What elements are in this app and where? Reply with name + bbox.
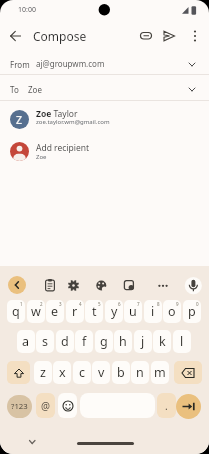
button[interactable]: n — [131, 361, 149, 384]
staticText: h — [119, 333, 127, 350]
button[interactable]: k — [153, 330, 171, 353]
button[interactable]: c — [73, 361, 91, 384]
staticText: 9 — [176, 301, 179, 307]
staticText: k — [159, 333, 166, 350]
staticText: t — [92, 303, 97, 320]
staticText: Compose — [33, 28, 87, 44]
staticText: a — [22, 333, 30, 350]
staticText: Add recipient — [36, 142, 90, 154]
staticText: m — [154, 364, 166, 381]
staticText: 1 — [20, 301, 23, 307]
staticText: From — [10, 59, 30, 70]
staticText: p — [188, 303, 196, 320]
staticText: e — [51, 303, 59, 320]
button[interactable]: To — [0, 75, 209, 100]
button[interactable] — [153, 275, 173, 295]
staticText: 2 — [40, 301, 43, 307]
button[interactable]: y — [105, 300, 123, 323]
staticText: Z — [16, 113, 23, 127]
button[interactable]: q — [7, 300, 25, 323]
staticText: y — [111, 303, 118, 320]
button[interactable] — [174, 361, 202, 384]
button[interactable] — [176, 394, 201, 419]
button[interactable]: x — [53, 361, 71, 384]
staticText: o — [168, 303, 176, 320]
staticText: f — [82, 333, 87, 350]
staticText: x — [59, 364, 66, 381]
button[interactable]: j — [134, 330, 152, 353]
staticText: 6 — [118, 301, 121, 307]
button[interactable]: Z — [0, 104, 209, 134]
staticText: l — [180, 333, 184, 350]
button[interactable]: ?123 — [7, 395, 32, 418]
button[interactable] — [7, 361, 30, 384]
button[interactable] — [58, 393, 77, 418]
button[interactable]: a — [17, 330, 35, 353]
button[interactable]: b — [112, 361, 130, 384]
button[interactable] — [40, 275, 60, 295]
button[interactable]: t — [85, 300, 103, 323]
button[interactable]: l — [173, 330, 191, 353]
staticText: 7 — [137, 301, 140, 307]
staticText: Zoe Taylor — [36, 108, 78, 120]
button[interactable] — [187, 28, 203, 44]
staticText: zoe.taylor.wm@gmail.com — [36, 118, 110, 126]
staticText: 0 — [196, 301, 199, 307]
button[interactable]: i — [144, 300, 162, 323]
button[interactable]: From — [0, 53, 209, 74]
staticText: . — [165, 399, 168, 413]
button[interactable] — [80, 393, 155, 418]
staticText: 3 — [59, 301, 62, 307]
button[interactable] — [183, 275, 203, 295]
staticText: aj@groupwm.com — [36, 58, 105, 69]
staticText: d — [61, 333, 69, 350]
staticText: r — [72, 303, 78, 320]
staticText: Zoe — [36, 153, 47, 161]
button[interactable]: f — [75, 330, 93, 353]
staticText: z — [40, 364, 46, 381]
button[interactable]: w — [27, 300, 45, 323]
button[interactable] — [6, 26, 26, 46]
button[interactable]: o — [163, 300, 181, 323]
staticText: 10:00 — [18, 5, 36, 15]
button[interactable]: Add recipient — [0, 136, 209, 166]
button[interactable]: @ — [36, 393, 55, 418]
staticText: g — [100, 333, 108, 350]
staticText: To — [10, 84, 19, 95]
staticText: w — [31, 303, 41, 320]
button[interactable]: u — [124, 300, 142, 323]
button[interactable]: . — [157, 393, 176, 418]
staticText: b — [117, 364, 125, 381]
button[interactable] — [91, 275, 111, 295]
staticText: c — [79, 364, 86, 381]
button[interactable]: s — [36, 330, 54, 353]
button[interactable] — [138, 28, 154, 44]
staticText: q — [12, 303, 20, 320]
button[interactable]: v — [92, 361, 110, 384]
staticText: s — [42, 333, 48, 350]
button[interactable]: h — [114, 330, 132, 353]
staticText: i — [151, 303, 155, 320]
button[interactable]: z — [34, 361, 52, 384]
button[interactable] — [8, 276, 26, 294]
staticText: n — [136, 364, 144, 381]
button[interactable] — [119, 275, 139, 295]
staticText: Zoe — [28, 84, 42, 95]
staticText: u — [129, 303, 137, 320]
button[interactable]: g — [95, 330, 113, 353]
staticText: v — [98, 364, 105, 381]
staticText: 4 — [79, 301, 82, 307]
button[interactable]: d — [56, 330, 74, 353]
button[interactable]: r — [66, 300, 84, 323]
staticText: 5 — [98, 301, 101, 307]
button[interactable] — [161, 28, 177, 44]
staticText: j — [141, 333, 145, 350]
button[interactable]: e — [46, 300, 64, 323]
button[interactable]: p — [183, 300, 201, 323]
staticText: ?123 — [11, 401, 28, 412]
staticText: @ — [41, 399, 50, 413]
staticText: 8 — [157, 301, 160, 307]
button[interactable]: m — [151, 361, 169, 384]
button[interactable] — [63, 275, 83, 295]
